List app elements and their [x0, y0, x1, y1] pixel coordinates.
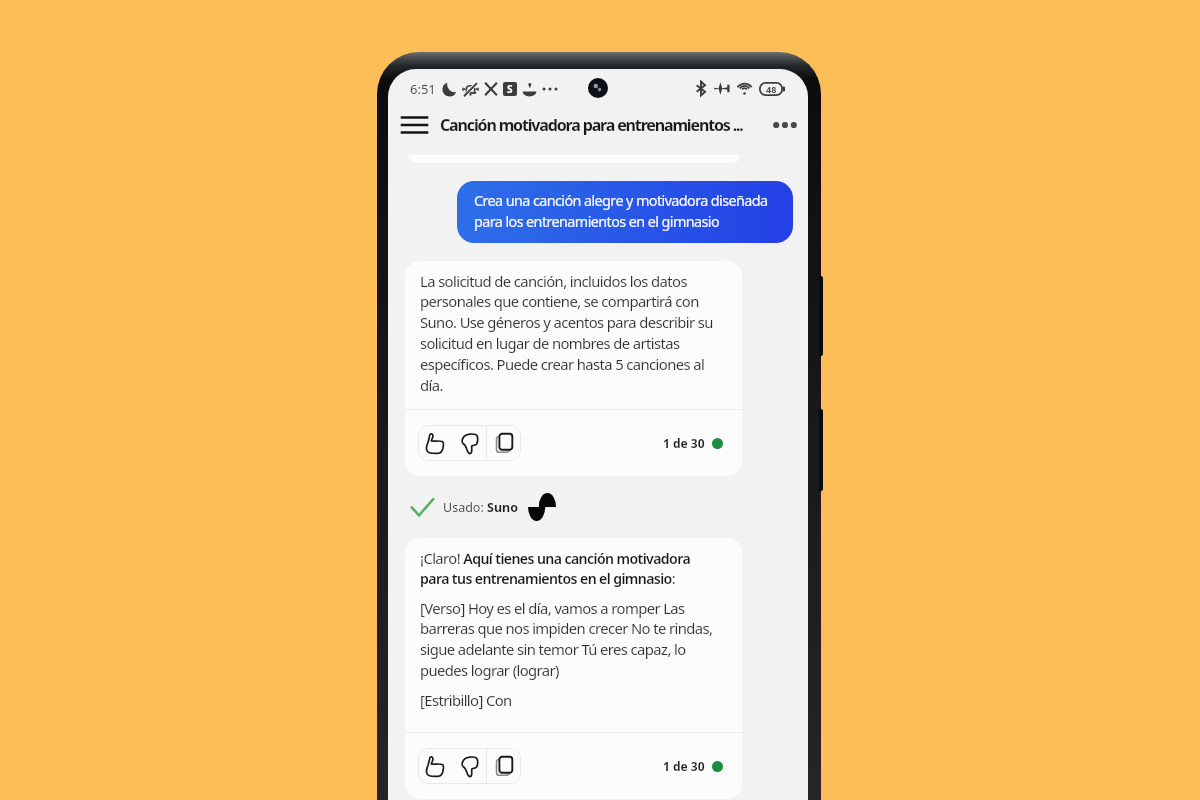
button[interactable]: More options — [761, 104, 808, 145]
staticText: [Verso] Hoy es el día, vamos a romper La… — [420, 598, 720, 681]
button[interactable]: Menu — [388, 104, 440, 145]
button[interactable]: Me gusta — [418, 748, 452, 784]
staticText: 1 de 30 — [663, 435, 705, 451]
button[interactable]: No me gusta — [452, 748, 486, 784]
button[interactable]: No me gusta — [452, 425, 486, 461]
button[interactable]: Copiar — [487, 425, 521, 461]
staticText: 6:51 — [410, 80, 436, 98]
staticText: S — [507, 82, 513, 96]
staticText: ¡Claro! Aquí tienes una canción motivado… — [420, 548, 720, 589]
staticText: [Estribillo] Con — [420, 690, 512, 710]
staticText: 1 de 30 — [663, 758, 705, 774]
staticText: Canción motivadora para entrenamientos .… — [440, 114, 761, 136]
staticText: 48 — [766, 83, 777, 95]
staticText: Crea una canción alegre y motivadora dis… — [474, 191, 776, 232]
button[interactable]: Me gusta — [418, 425, 452, 461]
button[interactable]: Crea una canción alegre y motivadora dis… — [457, 181, 793, 243]
staticText: La solicitud de canción, incluidos los d… — [420, 271, 720, 396]
staticText: Usado: Suno — [443, 499, 518, 516]
button[interactable]: Copiar — [487, 748, 521, 784]
